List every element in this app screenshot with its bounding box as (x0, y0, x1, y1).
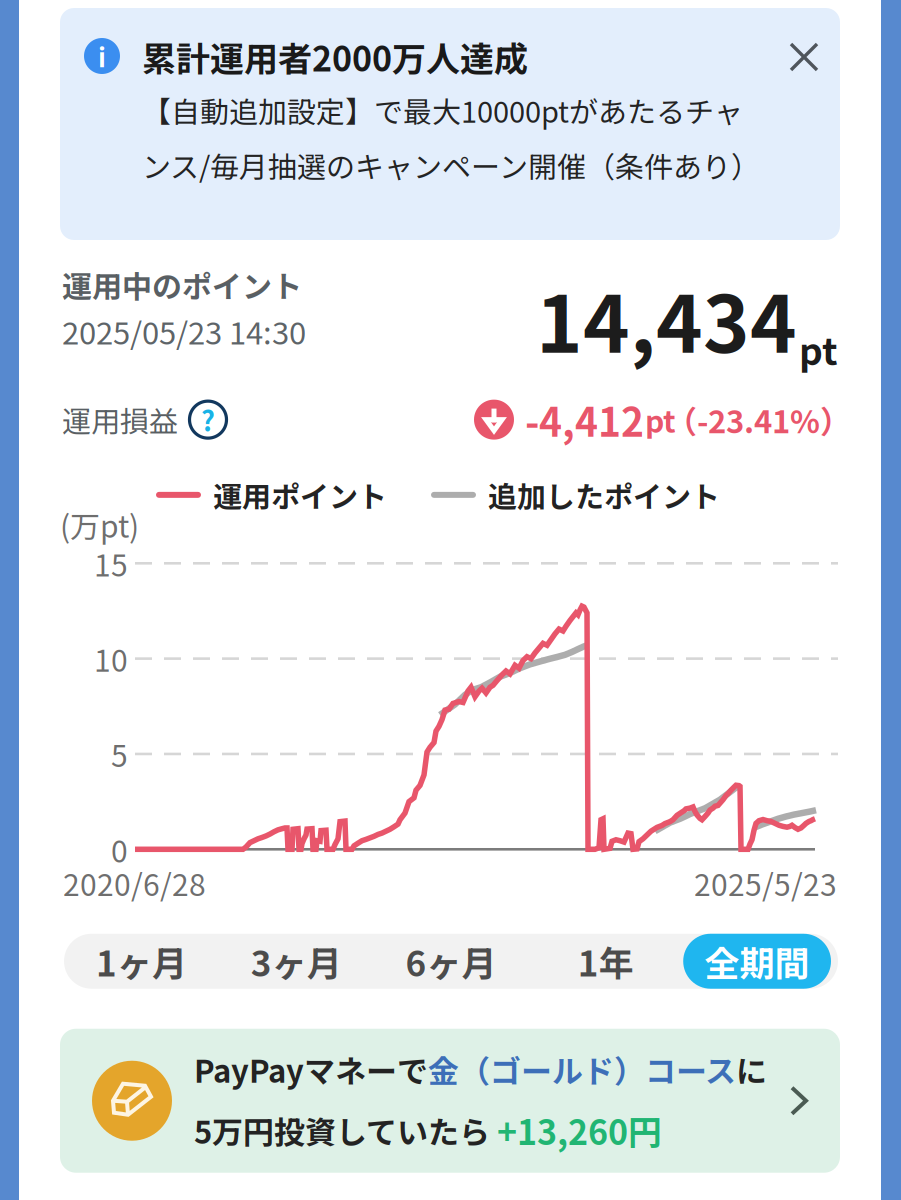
button[interactable]: 3ヶ月 (219, 934, 374, 989)
staticText: 0 (111, 828, 128, 871)
button[interactable]: PayPayマネーで (60, 1029, 840, 1173)
staticText: 2025/5/23 (694, 861, 837, 905)
staticText: 15 (94, 542, 128, 585)
staticText: 6ヶ月 (405, 936, 496, 987)
staticText: 2020/6/28 (63, 861, 206, 905)
staticText: 14,434 (536, 261, 797, 375)
staticText: ? (201, 400, 215, 439)
staticText: 2025/05/23 14:30 (62, 308, 306, 353)
staticText: 【自動追加設定】で最大10000ptがあたるチャンス/毎月抽選のキャンペーン開催… (142, 89, 760, 186)
button[interactable]: Help (178, 400, 228, 440)
button[interactable]: 全期間 (683, 934, 838, 989)
staticText: 1年 (578, 936, 634, 987)
button[interactable]: 1ヶ月 (64, 934, 219, 989)
staticText: 1ヶ月 (96, 936, 187, 987)
staticText: （-23.41%） (666, 397, 851, 442)
staticText: 運用ポイント (213, 474, 387, 516)
staticText: i (98, 37, 106, 75)
staticText: -4,412 (525, 391, 644, 448)
staticText: pt (799, 322, 838, 375)
staticText: 5万円投資していたら (194, 1108, 497, 1153)
staticText: 10 (94, 637, 128, 680)
button[interactable]: 6ヶ月 (374, 934, 528, 989)
staticText: 運用損益 (62, 399, 178, 441)
staticText: 全期間 (705, 936, 810, 987)
staticText: 運用中のポイント (62, 263, 302, 306)
staticText: PayPayマネーで (194, 1047, 428, 1092)
staticText: 金（ゴールド）コース (428, 1047, 736, 1092)
staticText: +13,260円 (497, 1106, 662, 1155)
staticText: に (736, 1047, 767, 1092)
button[interactable]: Close (790, 8, 840, 71)
staticText: 5 (111, 732, 128, 776)
staticText: pt (645, 398, 676, 441)
button[interactable]: 1年 (528, 934, 683, 989)
staticText: 3ヶ月 (251, 936, 342, 987)
staticText: 累計運用者2000万人達成 (142, 32, 528, 81)
staticText: 追加したポイント (488, 474, 720, 516)
staticText: (万pt) (60, 503, 139, 546)
